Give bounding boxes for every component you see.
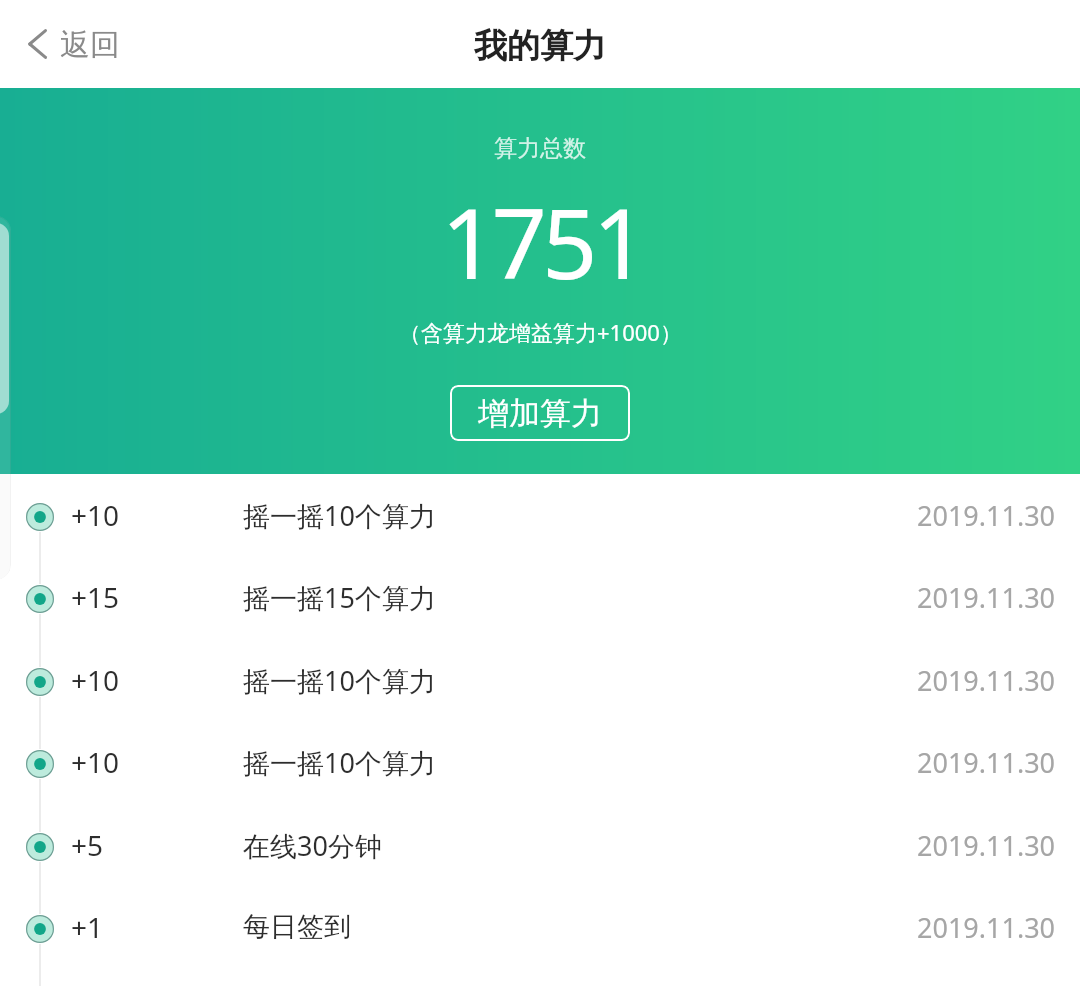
button[interactable]: +10 [0, 722, 1080, 806]
button[interactable]: +10 [0, 475, 1080, 559]
staticText: 每日签到 [243, 910, 351, 944]
button[interactable]: +15 [0, 557, 1080, 641]
staticText: 返回 [60, 26, 120, 64]
staticText: 2019.11.30 [917, 497, 1056, 534]
staticText: 摇一摇10个算力 [243, 662, 436, 699]
staticText: +1 [71, 908, 104, 946]
button[interactable]: +5 [0, 805, 1080, 889]
staticText: 2019.11.30 [917, 744, 1056, 781]
staticText: +5 [71, 826, 104, 864]
staticText: 摇一摇10个算力 [243, 744, 436, 781]
staticText: 摇一摇15个算力 [243, 579, 436, 616]
staticText: 2019.11.30 [917, 827, 1056, 864]
staticText: 我的算力 [474, 25, 606, 67]
staticText: 2019.11.30 [917, 662, 1056, 699]
staticText: +10 [71, 496, 120, 534]
staticText: 摇一摇10个算力 [243, 497, 436, 534]
staticText: 2019.11.30 [917, 579, 1056, 616]
staticText: 2019.11.30 [917, 909, 1056, 946]
staticText: 算力总数 [494, 134, 586, 163]
button[interactable]: +10 [0, 640, 1080, 724]
staticText: 1751 [441, 175, 643, 307]
staticText: （含算力龙增益算力+1000） [399, 317, 682, 347]
staticText: 在线30分钟 [243, 827, 382, 864]
staticText: +10 [71, 743, 120, 781]
button[interactable]: 增加算力 [450, 385, 630, 441]
staticText: +10 [71, 661, 120, 699]
button[interactable]: +1 [0, 887, 1080, 971]
staticText: 增加算力 [478, 394, 602, 433]
button[interactable]: 返回 Back [18, 17, 129, 71]
staticText: +15 [71, 578, 120, 616]
